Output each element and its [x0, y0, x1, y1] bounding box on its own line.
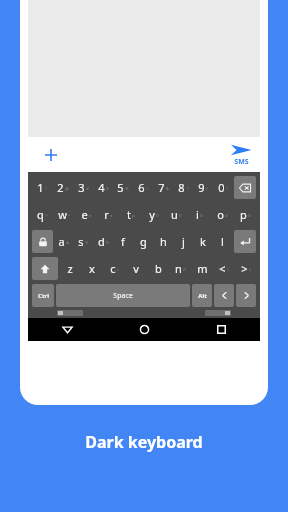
button[interactable]: Recents — [183, 318, 260, 341]
button[interactable]: Shift — [32, 257, 58, 280]
button[interactable]: Alt — [192, 284, 212, 307]
staticText: ! — [45, 186, 47, 191]
button[interactable]: 6 — [133, 175, 153, 200]
button[interactable]: r — [97, 202, 119, 227]
button[interactable]: b — [147, 256, 169, 281]
button[interactable]: j — [173, 229, 193, 254]
button[interactable]: Home — [106, 318, 183, 341]
button[interactable]: y — [142, 202, 165, 227]
staticText: w — [58, 207, 67, 222]
button[interactable]: Arrow right — [236, 284, 256, 307]
button[interactable]: m — [191, 256, 213, 281]
staticText: j — [182, 234, 185, 249]
staticText: ' — [225, 240, 226, 245]
button[interactable]: a — [54, 229, 73, 254]
button[interactable]: n — [169, 256, 191, 281]
button[interactable]: i — [188, 202, 211, 227]
staticText: p — [132, 213, 135, 218]
button[interactable]: v — [125, 256, 147, 281]
button[interactable]: 5 — [113, 175, 133, 200]
button[interactable]: 2 — [52, 175, 73, 200]
staticText: # — [86, 186, 89, 191]
staticText: 8 — [178, 180, 185, 195]
button[interactable]: Enter — [234, 230, 256, 253]
staticText: @ — [65, 186, 69, 191]
staticText: r — [104, 207, 109, 222]
button[interactable]: u — [165, 202, 188, 227]
button[interactable]: Send SMS — [230, 143, 252, 167]
button[interactable]: c — [103, 256, 125, 281]
staticText: 4 — [98, 180, 105, 195]
staticText: Space — [113, 291, 133, 301]
button[interactable]: h — [153, 229, 173, 254]
staticText: Alt — [198, 292, 207, 300]
staticText: & — [166, 186, 169, 191]
staticText: 0 — [200, 213, 203, 218]
button[interactable]: 8 — [173, 175, 193, 200]
button[interactable]: Resize right — [205, 310, 231, 316]
staticText: ó — [225, 213, 228, 218]
button[interactable]: o — [211, 202, 234, 227]
staticText: ( — [227, 267, 229, 272]
button[interactable]: 1 — [31, 175, 52, 200]
staticText: f — [121, 234, 125, 249]
button[interactable]: Add attachment — [38, 142, 64, 168]
button[interactable]: p — [234, 202, 257, 227]
staticText: 5 — [117, 180, 124, 195]
staticText: 7 — [158, 180, 165, 195]
button[interactable]: s — [73, 229, 93, 254]
button[interactable]: Arrow left — [214, 284, 234, 307]
staticText: e — [89, 213, 92, 218]
staticText: o — [217, 207, 224, 222]
staticText: x — [89, 261, 95, 276]
staticText: c — [110, 261, 116, 276]
staticText: p — [240, 207, 247, 222]
staticText: g — [140, 234, 147, 249]
button[interactable]: Caps lock — [32, 230, 53, 253]
button[interactable]: Ctrl — [32, 284, 54, 307]
button[interactable]: e — [75, 202, 97, 227]
button[interactable]: z — [59, 256, 81, 281]
button[interactable]: g — [133, 229, 153, 254]
staticText: u — [171, 207, 178, 222]
button[interactable]: 9 — [193, 175, 213, 200]
button[interactable]: w — [53, 202, 75, 227]
staticText: < — [219, 261, 226, 276]
button[interactable]: f — [113, 229, 133, 254]
staticText: Dark keyboard — [85, 431, 203, 453]
staticText: c — [117, 267, 119, 272]
staticText: D — [106, 240, 109, 245]
button[interactable]: > — [235, 256, 257, 281]
staticText: t — [127, 207, 131, 222]
button[interactable]: q — [31, 202, 53, 227]
staticText: ^ — [68, 213, 71, 218]
staticText: i — [196, 207, 199, 222]
button[interactable]: t — [119, 202, 142, 227]
staticText: v — [133, 261, 139, 276]
button[interactable]: l — [213, 229, 233, 254]
staticText: e — [81, 207, 88, 222]
button[interactable]: Back — [28, 318, 106, 341]
button[interactable]: 4 — [93, 175, 113, 200]
button[interactable]: x — [81, 256, 103, 281]
staticText: 9 — [198, 180, 205, 195]
staticText: n — [175, 261, 182, 276]
staticText: d — [98, 234, 105, 249]
staticText: k — [200, 234, 206, 249]
staticText: ^ — [146, 186, 149, 191]
button[interactable]: 0 — [213, 175, 233, 200]
button[interactable]: 3 — [73, 175, 93, 200]
staticText: ( — [206, 186, 208, 191]
staticText: $ — [106, 186, 109, 191]
button[interactable]: Space — [56, 284, 190, 307]
staticText: SMS — [234, 157, 249, 167]
button[interactable]: d — [93, 229, 113, 254]
button[interactable]: Backspace — [234, 176, 256, 199]
button[interactable]: Resize left — [57, 310, 83, 316]
button[interactable]: 7 — [153, 175, 173, 200]
staticText: a — [58, 234, 65, 249]
staticText: e — [110, 213, 113, 218]
staticText: 1 — [37, 180, 44, 195]
button[interactable]: < — [213, 256, 235, 281]
button[interactable]: k — [193, 229, 213, 254]
